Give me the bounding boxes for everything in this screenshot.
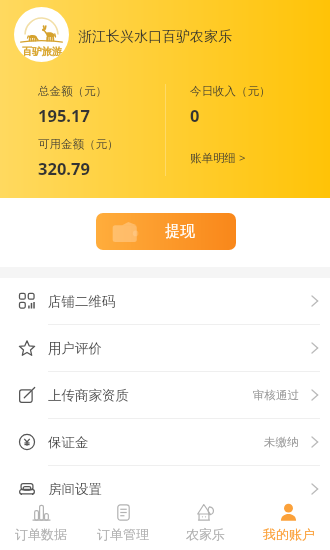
button[interactable]: 保证金 [0, 419, 330, 465]
staticText: 总金额（元） [38, 84, 107, 98]
staticText: 订单数据 [15, 526, 67, 542]
button[interactable]: 上传商家资质 [0, 372, 330, 418]
staticText: 房间设置 [48, 481, 102, 498]
staticText: 保证金 [48, 434, 89, 451]
staticText: 未缴纳 [264, 435, 299, 449]
button[interactable]: 订单数据 [0, 495, 82, 550]
button[interactable]: 用户评价 [0, 325, 330, 371]
staticText: 店铺二维码 [48, 293, 116, 310]
button[interactable]: 店铺二维码 [0, 278, 330, 324]
button[interactable]: 提现 [96, 213, 236, 250]
staticText: 可用金额（元） [38, 137, 119, 151]
staticText: 320.79 [38, 157, 90, 179]
staticText: 账单明细 > [190, 150, 246, 166]
staticText: 用户评价 [48, 340, 102, 357]
staticText: 0 [190, 104, 200, 126]
button[interactable]: 房间设置 [0, 466, 330, 512]
staticText: 195.17 [38, 104, 90, 126]
staticText: 农家乐 [186, 526, 225, 542]
staticText: 我的账户 [263, 526, 315, 542]
button[interactable]: 订单管理 [82, 495, 164, 550]
button[interactable]: 账单明细 > [184, 145, 252, 171]
staticText: 今日收入（元） [190, 84, 271, 98]
staticText: 百驴旅游 [22, 45, 62, 58]
staticText: 订单管理 [97, 526, 149, 542]
staticText: 浙江长兴水口百驴农家乐 [78, 28, 232, 46]
staticText: 审核通过 [253, 388, 299, 402]
button[interactable]: 农家乐 [164, 495, 247, 550]
staticText: 上传商家资质 [48, 387, 129, 404]
button[interactable]: 我的账户 [247, 495, 330, 550]
staticText: 提现 [165, 222, 195, 241]
